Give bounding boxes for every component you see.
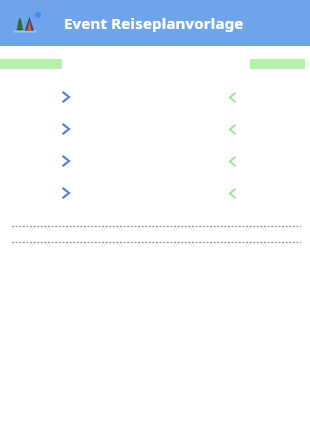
button[interactable]: Expand xyxy=(0,177,310,209)
other: Camping trip xyxy=(14,11,42,35)
button[interactable]: Expand xyxy=(0,81,310,113)
other: Collapse xyxy=(228,124,237,135)
staticText: Event Reiseplanvorlage xyxy=(64,13,244,33)
button[interactable]: Expand xyxy=(0,145,310,177)
button[interactable]: Camping trip xyxy=(0,0,310,46)
button[interactable]: Expand xyxy=(0,113,310,145)
other: Expand xyxy=(61,155,71,167)
other: Expand xyxy=(61,187,71,199)
other: Collapse xyxy=(228,156,237,167)
other: Collapse xyxy=(228,188,237,199)
other: Expand xyxy=(61,91,71,103)
other: Collapse xyxy=(228,92,237,103)
other: Expand xyxy=(61,123,71,135)
